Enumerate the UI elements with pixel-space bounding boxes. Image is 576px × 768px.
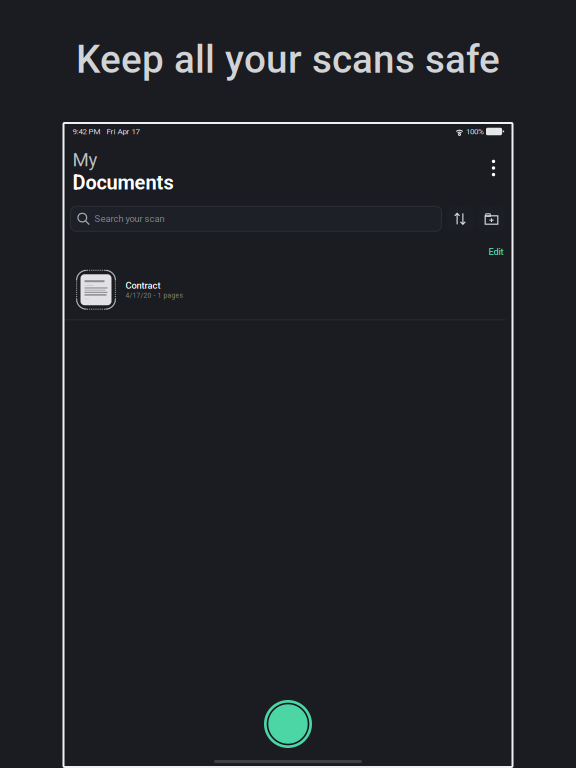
button[interactable]: New folder [478,206,504,231]
staticText: Contract [125,280,160,291]
staticText: Documents [72,171,173,194]
staticText: 100% [464,127,486,136]
staticText: My [72,149,97,171]
staticText: Edit [488,246,503,257]
button[interactable]: More options [478,149,508,187]
button[interactable]: Search your scan [70,206,441,231]
staticText: Keep all your scans safe [76,37,500,82]
button[interactable]: Sort [446,206,473,231]
staticText: 9:42 PM Fri Apr 17 [72,127,139,136]
button[interactable]: Contract [63,260,512,319]
staticText: 4/17/20 - 1 pages [125,292,182,299]
button[interactable]: Edit [485,243,506,260]
button[interactable]: New scan [261,697,315,751]
staticText: Search your scan [94,213,164,224]
